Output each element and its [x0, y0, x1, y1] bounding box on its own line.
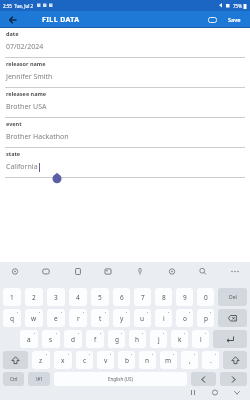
button[interactable]: event	[0, 118, 250, 148]
staticText: event	[6, 120, 22, 127]
staticText: releasor name	[6, 60, 46, 67]
button[interactable]: z	[32, 351, 50, 369]
staticText: California	[6, 162, 38, 172]
button[interactable]: t	[91, 309, 109, 327]
button[interactable]	[200, 386, 215, 400]
staticText: Del	[229, 294, 237, 301]
button[interactable]	[0, 11, 26, 28]
staticText: date	[6, 30, 19, 37]
button[interactable]: v	[97, 351, 114, 369]
button[interactable]: 8	[155, 288, 172, 306]
staticText: Jennifer Smith	[6, 72, 53, 82]
button[interactable]	[188, 262, 219, 288]
button[interactable]: l	[192, 330, 209, 348]
staticText: q	[10, 314, 14, 323]
button[interactable]: f	[86, 330, 104, 348]
button[interactable]: 2	[25, 288, 43, 306]
button[interactable]: s	[42, 330, 60, 348]
button[interactable]	[213, 330, 247, 348]
button[interactable]	[215, 386, 230, 400]
staticText: v	[104, 356, 108, 365]
button[interactable]: English (US)	[54, 372, 187, 386]
button[interactable]	[218, 309, 247, 327]
button[interactable]: d	[64, 330, 82, 348]
staticText: 07/02/2024	[6, 42, 44, 52]
button[interactable]: e	[47, 309, 65, 327]
button[interactable]: n	[139, 351, 156, 369]
button[interactable]: g	[108, 330, 125, 348]
button[interactable]: y	[113, 309, 130, 327]
button[interactable]	[0, 262, 32, 288]
button[interactable]	[204, 11, 220, 28]
button[interactable]: Del	[218, 288, 247, 306]
button[interactable]: releasor name	[0, 58, 250, 88]
staticText: Brother Hackathon	[6, 132, 69, 142]
button[interactable]: state	[0, 148, 250, 178]
button[interactable]: p	[197, 309, 214, 327]
button[interactable]: 3	[47, 288, 65, 306]
button[interactable]: o	[176, 309, 193, 327]
staticText: 7	[141, 293, 145, 302]
button[interactable]: .	[202, 351, 219, 369]
staticText: Brother USA	[6, 102, 47, 112]
button[interactable]: Save	[228, 11, 241, 28]
button[interactable]: r	[69, 309, 87, 327]
staticText: 3	[54, 293, 58, 302]
staticText: t	[99, 314, 102, 323]
staticText: 4	[76, 293, 80, 302]
staticText: c	[83, 356, 87, 365]
button[interactable]	[95, 262, 126, 288]
button[interactable]	[219, 262, 250, 288]
staticText: e	[54, 314, 58, 323]
button[interactable]: 9	[176, 288, 193, 306]
staticText: r	[77, 314, 80, 323]
staticText: d	[71, 335, 75, 344]
staticText: l	[200, 335, 202, 344]
button[interactable]: b	[118, 351, 135, 369]
staticText: 0	[204, 293, 208, 302]
staticText: ,	[189, 356, 191, 365]
button[interactable]: k	[171, 330, 188, 348]
button[interactable]: c	[76, 351, 93, 369]
button[interactable]: h	[129, 330, 146, 348]
button[interactable]: releasee name	[0, 88, 250, 118]
button[interactable]: a	[20, 330, 38, 348]
button[interactable]	[191, 372, 216, 386]
button[interactable]: ,	[181, 351, 198, 369]
button[interactable]: 4	[69, 288, 87, 306]
button[interactable]: !#1	[28, 372, 50, 386]
button[interactable]: 0	[197, 288, 214, 306]
button[interactable]: Ctrl	[3, 372, 24, 386]
staticText: 2	[32, 293, 36, 302]
button[interactable]	[230, 386, 245, 400]
button[interactable]: u	[134, 309, 151, 327]
button[interactable]: x	[54, 351, 72, 369]
staticText: u	[140, 314, 145, 323]
button[interactable]: i	[155, 309, 172, 327]
button[interactable]: j	[150, 330, 167, 348]
staticText: !#1	[36, 376, 43, 382]
staticText: 75%	[233, 3, 242, 9]
button[interactable]: m	[160, 351, 177, 369]
button[interactable]: 1	[3, 288, 21, 306]
button[interactable]: q	[3, 309, 21, 327]
staticText: n	[145, 356, 150, 365]
button[interactable]	[157, 262, 188, 288]
staticText: releasee name	[6, 90, 47, 97]
button[interactable]: 5	[91, 288, 109, 306]
staticText: g	[115, 335, 119, 344]
button[interactable]	[3, 351, 28, 369]
button[interactable]	[223, 351, 247, 369]
staticText: s	[49, 335, 53, 344]
button[interactable]	[220, 372, 247, 386]
button[interactable]	[64, 262, 95, 288]
button[interactable]	[32, 262, 64, 288]
button[interactable]: w	[25, 309, 43, 327]
staticText: FILL DATA	[42, 15, 80, 25]
button[interactable]: 7	[134, 288, 151, 306]
button[interactable]	[126, 262, 157, 288]
button[interactable]: 6	[113, 288, 130, 306]
staticText: p	[204, 314, 208, 323]
button[interactable]: date	[0, 28, 250, 58]
staticText: 1	[10, 293, 14, 302]
